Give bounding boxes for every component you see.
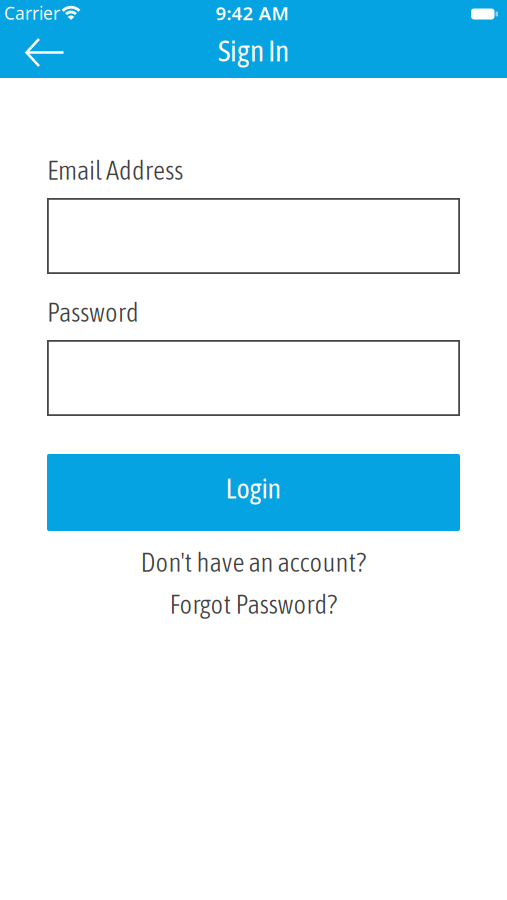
staticText: Login <box>225 472 281 505</box>
staticText: Password <box>47 297 139 327</box>
staticText: Sign In <box>218 34 289 68</box>
button[interactable]: Login <box>47 454 460 531</box>
staticText: Forgot Password? <box>169 589 337 619</box>
button[interactable]: Forgot Password? <box>47 592 460 616</box>
textField[interactable]: Email Address <box>47 221 460 251</box>
staticText: Don't have an account? <box>140 547 366 577</box>
staticText: 9:42 AM <box>215 1 288 25</box>
button[interactable]: Don't have an account? <box>47 550 460 574</box>
staticText: Email Address <box>47 155 183 185</box>
button[interactable]: Back <box>21 33 67 71</box>
textField[interactable]: Password <box>47 363 460 393</box>
staticText: Carrier <box>4 1 60 24</box>
